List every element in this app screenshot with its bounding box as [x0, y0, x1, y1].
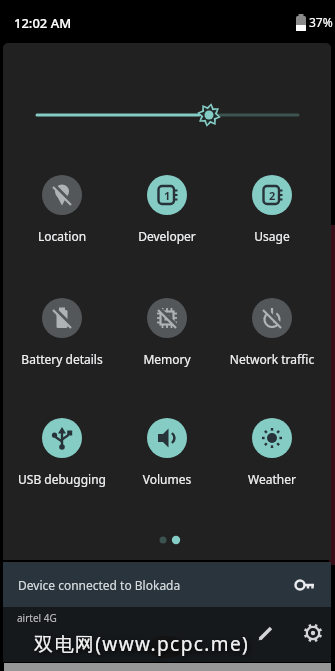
button[interactable]: 1	[115, 173, 219, 253]
button[interactable]	[297, 617, 329, 649]
staticText: Developer	[115, 228, 219, 244]
button[interactable]: Location	[10, 173, 114, 253]
staticText: USB debugging	[10, 471, 114, 487]
button[interactable]: USB debugging	[10, 416, 114, 496]
staticText: 1	[164, 188, 171, 203]
button[interactable]: Weather	[220, 416, 324, 496]
staticText: Usage	[220, 228, 324, 244]
button[interactable]: Device connected to Blokada	[3, 562, 331, 607]
staticText: 双电网(www.pcpc.me)	[34, 631, 250, 657]
staticText: Location	[10, 228, 114, 244]
staticText: Battery details	[10, 351, 114, 367]
staticText: Device connected to Blokada	[18, 577, 181, 593]
staticText: airtel 4G	[17, 611, 57, 625]
staticText: Network traffic	[220, 351, 324, 367]
button[interactable]: 2	[220, 173, 324, 253]
staticText: 12:02 AM	[14, 14, 72, 32]
staticText: Memory	[115, 351, 219, 367]
button[interactable]: Battery details	[10, 296, 114, 376]
staticText: 2	[269, 188, 276, 203]
button[interactable]	[250, 617, 282, 649]
button[interactable]	[30, 95, 310, 135]
staticText: Weather	[220, 471, 324, 487]
button[interactable]: Volumes	[115, 416, 219, 496]
button[interactable]: Network traffic	[220, 296, 324, 376]
staticText: Volumes	[115, 471, 219, 487]
button[interactable]: Memory	[115, 296, 219, 376]
staticText: 37%	[309, 14, 333, 30]
